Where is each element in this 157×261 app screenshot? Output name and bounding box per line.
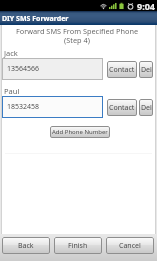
button[interactable]: Contact [107,99,137,116]
staticText: Del [141,103,152,113]
staticText: Paul [4,86,20,96]
staticText: DIY SMS Forwarder [2,14,69,24]
staticText: Forward SMS From Specified Phone (Step 4… [1,26,153,46]
button[interactable]: 13564566 [2,58,103,80]
staticText: Finish [68,241,88,251]
staticText: Del [141,65,152,75]
staticText: Cancel [119,241,141,251]
button[interactable]: Del [139,99,153,116]
button[interactable]: Add Phone Number [50,126,110,138]
button[interactable]: Back [2,237,50,254]
button[interactable]: Del [139,61,153,78]
staticText: Contact [109,65,135,75]
staticText: Add Phone Number [52,128,108,136]
button[interactable]: Finish [54,237,102,254]
staticText: Back [18,241,34,251]
staticText: 9:04 [137,0,155,11]
button[interactable]: Cancel [106,237,154,254]
staticText: Contact [109,103,135,113]
staticText: Jack [4,48,18,58]
button[interactable]: 18532458 [2,96,103,118]
staticText: 13564566 [7,64,40,74]
staticText: 18532458 [7,102,40,112]
button[interactable]: Contact [107,61,137,78]
